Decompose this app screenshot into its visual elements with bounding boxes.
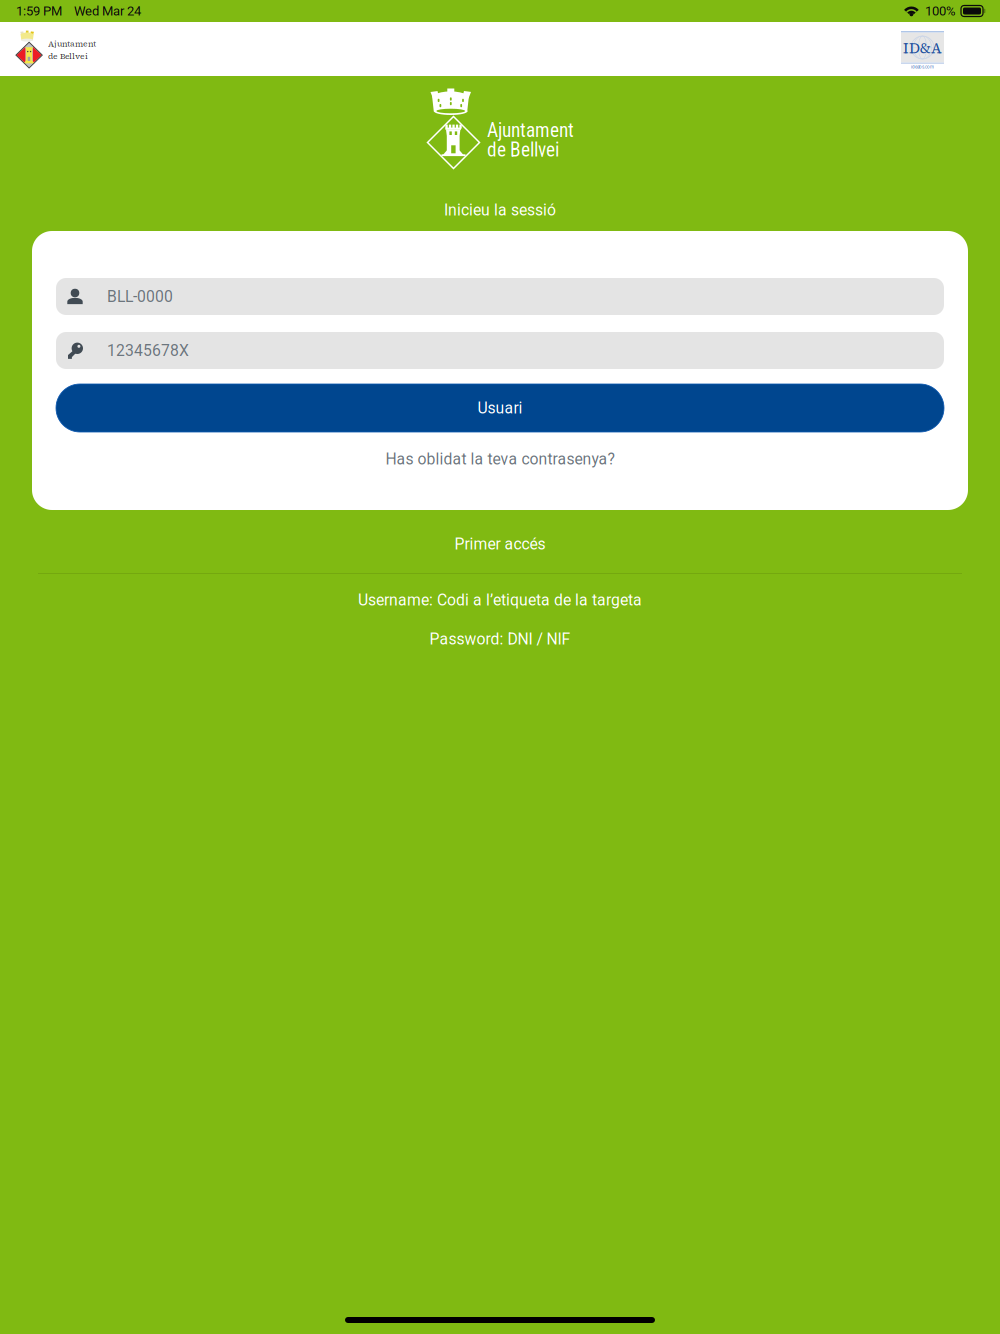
staticText: ID&A xyxy=(903,38,942,58)
button[interactable]: Usuari xyxy=(56,278,944,315)
staticText: Has oblidat la teva contrasenya? xyxy=(385,450,614,468)
staticText: 1:59 PM xyxy=(16,3,62,19)
staticText: 100% xyxy=(925,3,956,19)
staticText: 12345678X xyxy=(107,341,189,360)
staticText: Password: DNI / NIF xyxy=(429,630,570,648)
staticText: ideabs.com xyxy=(911,64,934,70)
button[interactable]: ID&A — ideabs.com xyxy=(901,31,944,71)
staticText: de Bellvei xyxy=(48,51,88,62)
staticText: BLL-0000 xyxy=(107,287,173,306)
staticText: Ajuntament xyxy=(48,38,96,49)
staticText: Wed Mar 24 xyxy=(74,3,141,19)
button[interactable]: Contrasenya xyxy=(56,332,944,369)
staticText: Ajuntament xyxy=(487,119,574,142)
button[interactable]: Ajuntament de Bellvei xyxy=(16,31,43,68)
staticText: de Bellvei xyxy=(487,139,559,161)
staticText: Usuari xyxy=(477,399,522,417)
button[interactable]: Has oblidat la teva contrasenya? xyxy=(56,444,944,474)
staticText: Username: Codi a l’etiqueta de la target… xyxy=(358,591,642,609)
staticText: Inicieu la sessió xyxy=(444,201,556,219)
button[interactable]: Usuari xyxy=(56,384,944,432)
staticText: Primer accés xyxy=(454,535,545,553)
